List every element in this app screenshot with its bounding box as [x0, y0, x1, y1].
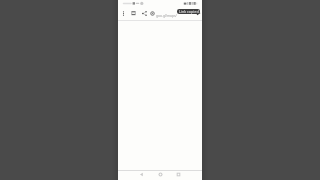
- button[interactable]: Share: [140, 9, 149, 18]
- button[interactable]: Link copied: [177, 9, 200, 14]
- staticText: Link copied: [179, 9, 199, 14]
- button[interactable]: Recent apps: [174, 170, 183, 179]
- button[interactable]: More options: [119, 9, 128, 18]
- button[interactable]: Account: [148, 9, 157, 18]
- staticText: goo.gl/maps/: [156, 13, 177, 17]
- button[interactable]: Tabs: [129, 9, 138, 18]
- button[interactable]: Home: [156, 170, 165, 179]
- button[interactable]: Back: [137, 170, 146, 179]
